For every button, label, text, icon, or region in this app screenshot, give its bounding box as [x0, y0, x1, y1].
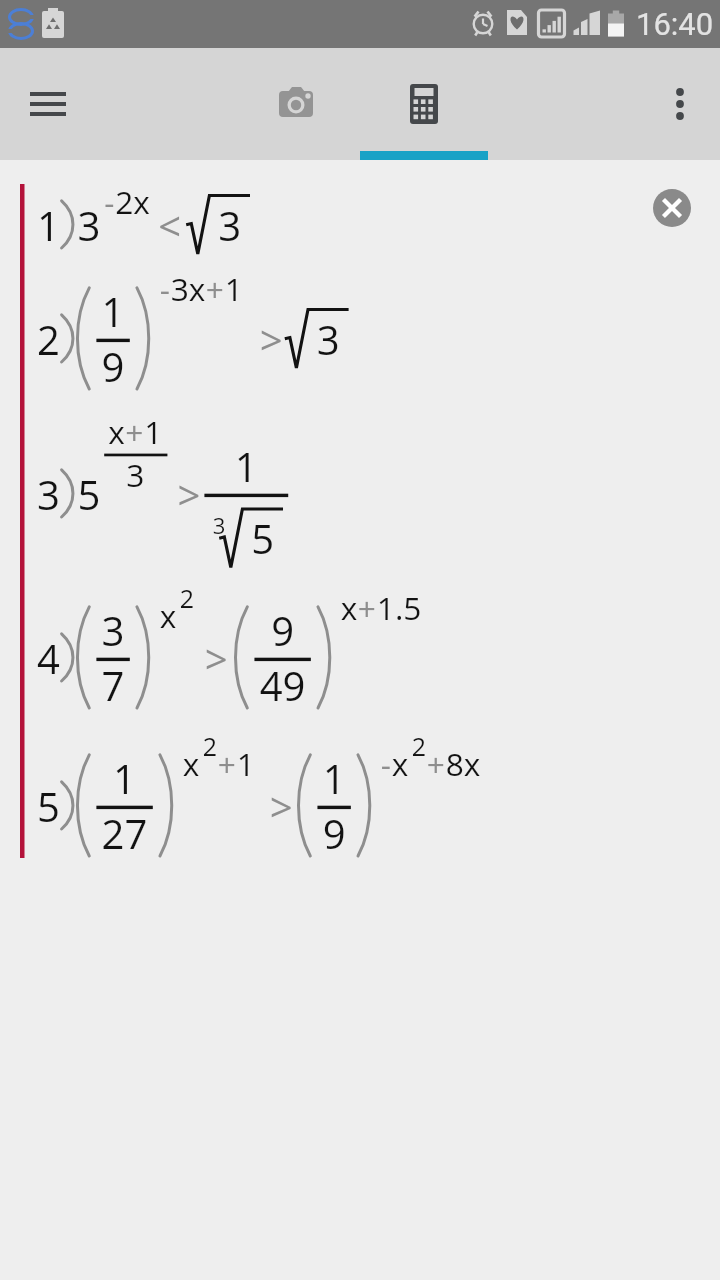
- button[interactable]: Close: [653, 189, 691, 227]
- button[interactable]: Camera: [182, 48, 414, 160]
- button[interactable]: Calculator: [360, 48, 488, 160]
- button[interactable]: Navigation menu: [0, 48, 96, 160]
- button[interactable]: More options: [640, 48, 720, 160]
